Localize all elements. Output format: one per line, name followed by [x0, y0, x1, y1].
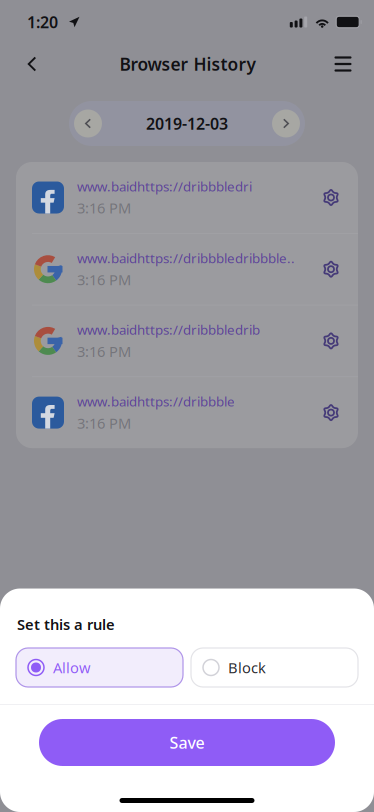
button[interactable]: Row settings	[315, 325, 347, 357]
button[interactable]: Allow	[16, 648, 183, 687]
button[interactable]: Menu	[321, 44, 365, 84]
staticText: 3:16 PM	[77, 198, 131, 218]
button[interactable]: Block	[191, 648, 358, 687]
staticText: Block	[228, 658, 266, 677]
button[interactable]: Previous day	[74, 109, 102, 137]
staticText: Browser History	[119, 52, 255, 75]
staticText: Allow	[53, 658, 91, 677]
staticText: 2019-12-03	[146, 113, 228, 134]
button[interactable]: Row settings	[315, 397, 347, 429]
staticText: Set this a rule	[17, 614, 115, 634]
staticText: 3:16 PM	[77, 270, 131, 289]
staticText: 1:20	[27, 11, 58, 33]
button[interactable]: Row settings	[315, 253, 347, 285]
button[interactable]: Save	[39, 719, 335, 766]
button[interactable]: Next day	[272, 109, 300, 137]
staticText: www.baidhttps://dribbbledri	[77, 177, 252, 195]
staticText: www.baidhttps://dribbble	[77, 392, 235, 410]
staticText: www.baidhttps://dribbbledrib	[77, 321, 260, 338]
button[interactable]: Back	[10, 44, 54, 84]
staticText: Save	[169, 732, 204, 753]
button[interactable]: Row settings	[315, 181, 347, 213]
staticText: www.baidhttps://dribbbledribbble..	[77, 249, 295, 267]
staticText: 3:16 PM	[77, 341, 131, 361]
staticText: 3:16 PM	[77, 413, 131, 433]
